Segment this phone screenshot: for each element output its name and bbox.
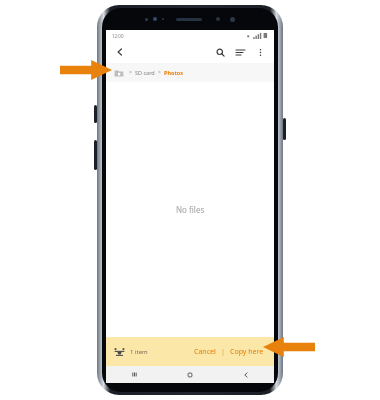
button[interactable]: SD card bbox=[135, 69, 155, 76]
button[interactable]: Home bbox=[162, 366, 218, 383]
button[interactable]: Cancel bbox=[192, 347, 218, 357]
staticText: 1 item bbox=[130, 348, 148, 356]
button[interactable]: Recents bbox=[106, 366, 162, 383]
staticText: > bbox=[158, 69, 161, 76]
staticText: No files bbox=[176, 204, 205, 215]
staticText: Cancel bbox=[194, 347, 216, 357]
staticText: Copy here bbox=[230, 347, 264, 357]
staticText: > bbox=[129, 69, 132, 76]
staticText: 12:00 bbox=[112, 33, 124, 39]
button[interactable]: Copy here bbox=[228, 347, 266, 357]
button[interactable]: Root folder bbox=[113, 67, 125, 79]
button[interactable]: Search bbox=[212, 44, 228, 60]
staticText: SD card bbox=[135, 69, 155, 76]
button[interactable]: Back bbox=[112, 44, 128, 60]
button[interactable]: Photos bbox=[164, 69, 184, 76]
staticText: Photos bbox=[164, 69, 184, 76]
button[interactable]: Back bbox=[218, 366, 274, 383]
staticText: | bbox=[221, 347, 225, 357]
button[interactable]: Sort bbox=[232, 44, 248, 60]
button[interactable]: More options bbox=[252, 44, 268, 60]
